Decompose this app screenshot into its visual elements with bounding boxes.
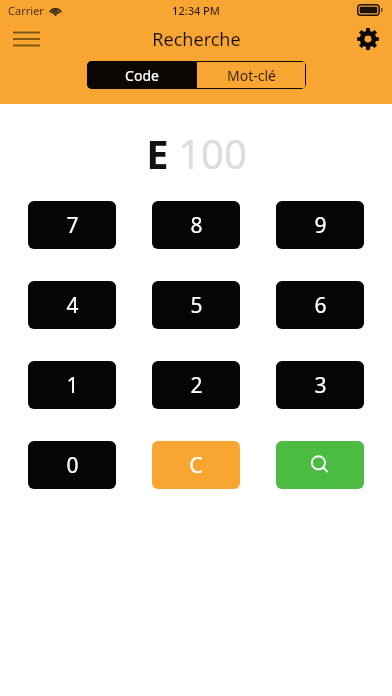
staticText: 4: [66, 291, 79, 320]
button[interactable]: C: [152, 441, 240, 489]
staticText: Code: [125, 66, 159, 85]
button[interactable]: 9: [276, 201, 364, 249]
button[interactable]: 8: [152, 201, 240, 249]
staticText: 2: [190, 371, 203, 400]
staticText: 5: [190, 291, 203, 320]
button[interactable]: 0: [28, 441, 116, 489]
staticText: Carrier: [8, 3, 44, 18]
button[interactable]: Menu: [0, 20, 52, 58]
staticText: 6: [314, 291, 327, 320]
button[interactable]: 5: [152, 281, 240, 329]
staticText: C: [189, 451, 203, 480]
button[interactable]: 7: [28, 201, 116, 249]
button[interactable]: 2: [152, 361, 240, 409]
staticText: 9: [314, 211, 327, 240]
button[interactable]: Settings: [344, 20, 392, 58]
button[interactable]: 4: [28, 281, 116, 329]
staticText: 1: [66, 371, 79, 400]
staticText: 7: [66, 211, 79, 240]
button[interactable]: Search: [276, 441, 364, 489]
button[interactable]: 1: [28, 361, 116, 409]
button[interactable]: Code: [87, 61, 196, 89]
staticText: 12:34 PM: [172, 3, 220, 18]
staticText: 3: [314, 371, 327, 400]
staticText: 0: [66, 451, 79, 480]
staticText: Mot-clé: [227, 66, 276, 85]
button[interactable]: 3: [276, 361, 364, 409]
staticText: 8: [190, 211, 203, 240]
staticText: Recherche: [152, 27, 241, 52]
staticText: 100: [178, 126, 247, 180]
button[interactable]: 6: [276, 281, 364, 329]
button[interactable]: Mot-clé: [197, 62, 305, 88]
staticText: E: [146, 126, 169, 180]
